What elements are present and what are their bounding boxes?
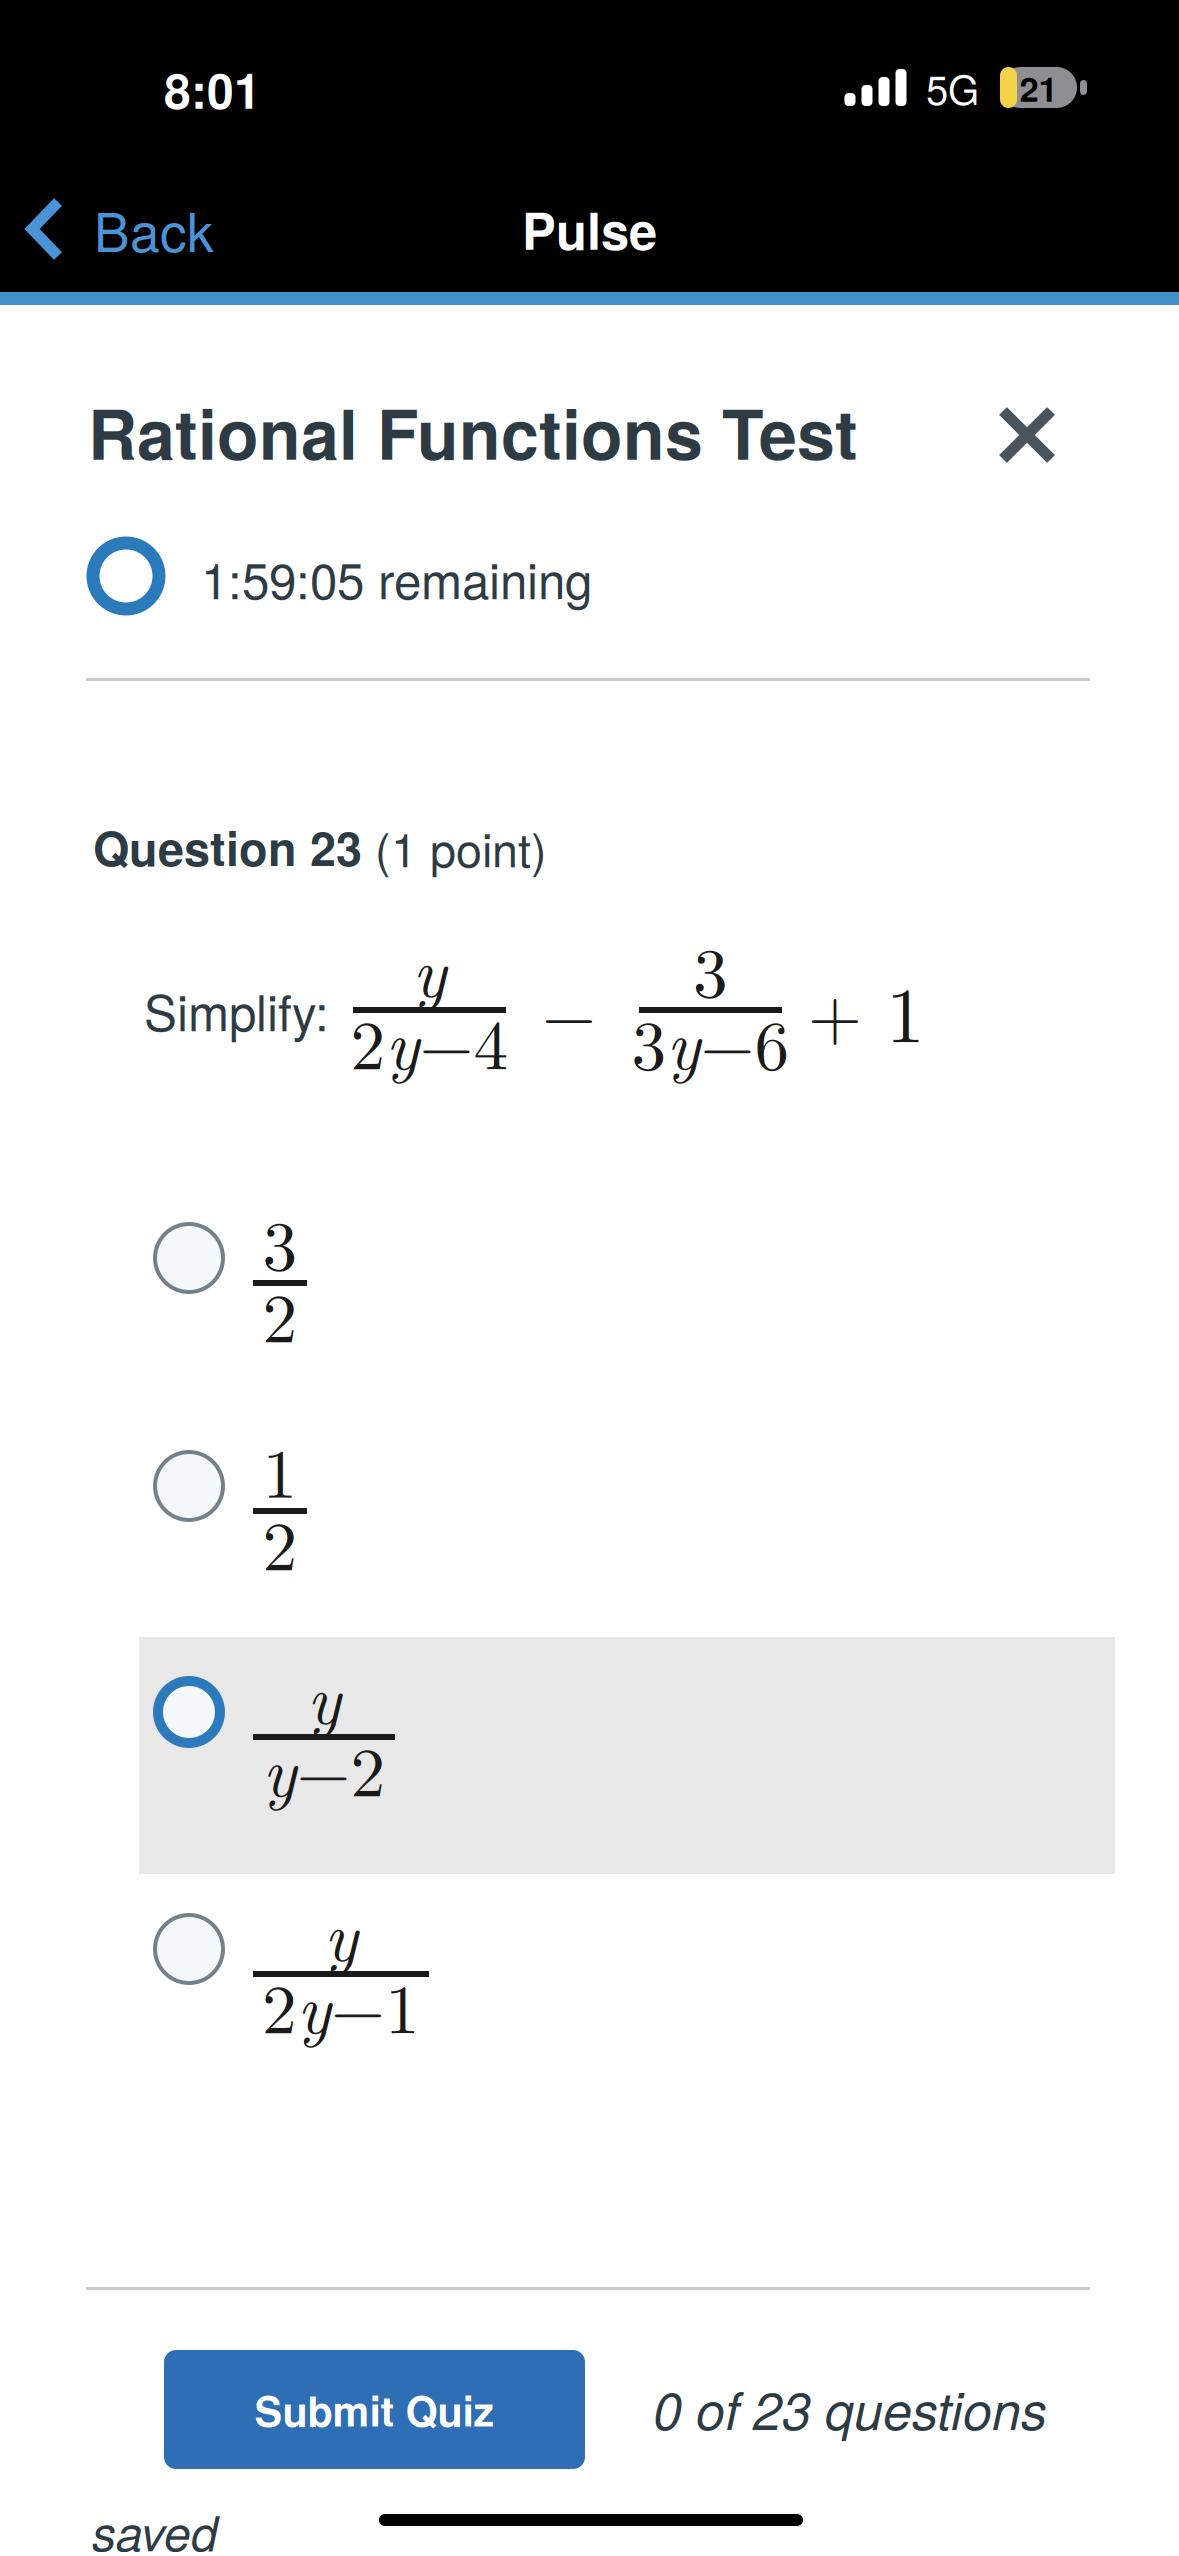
staticText: − — [700, 1002, 754, 1079]
staticText: 2 — [350, 1729, 385, 1806]
staticText: 0 of 23 questions — [653, 2371, 1047, 2445]
staticText: Back — [94, 191, 214, 267]
staticText: Rational Functions Test — [88, 383, 858, 481]
staticText: Pulse — [522, 193, 657, 265]
staticText: Question 23 — [93, 814, 362, 880]
button[interactable]: 3 — [139, 1168, 1115, 1348]
staticText: 21 — [1019, 63, 1057, 112]
staticText: + — [808, 972, 862, 1048]
staticText: 2 — [350, 1002, 385, 1079]
staticText: − — [296, 1729, 350, 1806]
button[interactable]: y — [139, 1859, 1115, 2039]
staticText: 2 — [262, 1503, 297, 1580]
staticText: y — [385, 1002, 419, 1079]
staticText: 1:59:05 remaining — [201, 543, 592, 613]
staticText: y — [412, 929, 446, 1006]
button[interactable]: 1 — [139, 1396, 1115, 1576]
staticText: (1 point) — [362, 814, 547, 880]
button[interactable]: Close quiz — [971, 379, 1083, 491]
button[interactable]: y — [139, 1622, 1115, 1802]
staticText: y — [307, 1656, 341, 1733]
staticText: 5G — [926, 59, 979, 116]
staticText: 3 — [262, 1202, 297, 1279]
staticText: 8:01 — [164, 55, 261, 123]
staticText: 3 — [631, 1002, 666, 1079]
staticText: y — [262, 1729, 296, 1806]
staticText: − — [331, 1966, 385, 2043]
staticText: 1 — [886, 967, 925, 1053]
staticText: 1 — [262, 1430, 297, 1507]
staticText: − — [542, 972, 596, 1048]
staticText: 6 — [754, 1002, 789, 1079]
staticText: 2 — [262, 1966, 297, 2043]
button[interactable]: Back — [24, 182, 344, 276]
staticText: y — [666, 1002, 700, 1079]
staticText: 3 — [693, 929, 728, 1006]
staticText: Submit Quiz — [254, 2380, 494, 2439]
staticText: 2 — [262, 1275, 297, 1352]
staticText: 1 — [385, 1966, 420, 2043]
staticText: 4 — [473, 1002, 508, 1079]
staticText: − — [419, 1002, 473, 1079]
staticText: y — [324, 1893, 358, 1970]
staticText: saved — [92, 2497, 218, 2556]
staticText: y — [297, 1966, 331, 2043]
button[interactable]: Submit Quiz — [164, 2350, 585, 2469]
staticText: Simplify: — [144, 975, 329, 1045]
